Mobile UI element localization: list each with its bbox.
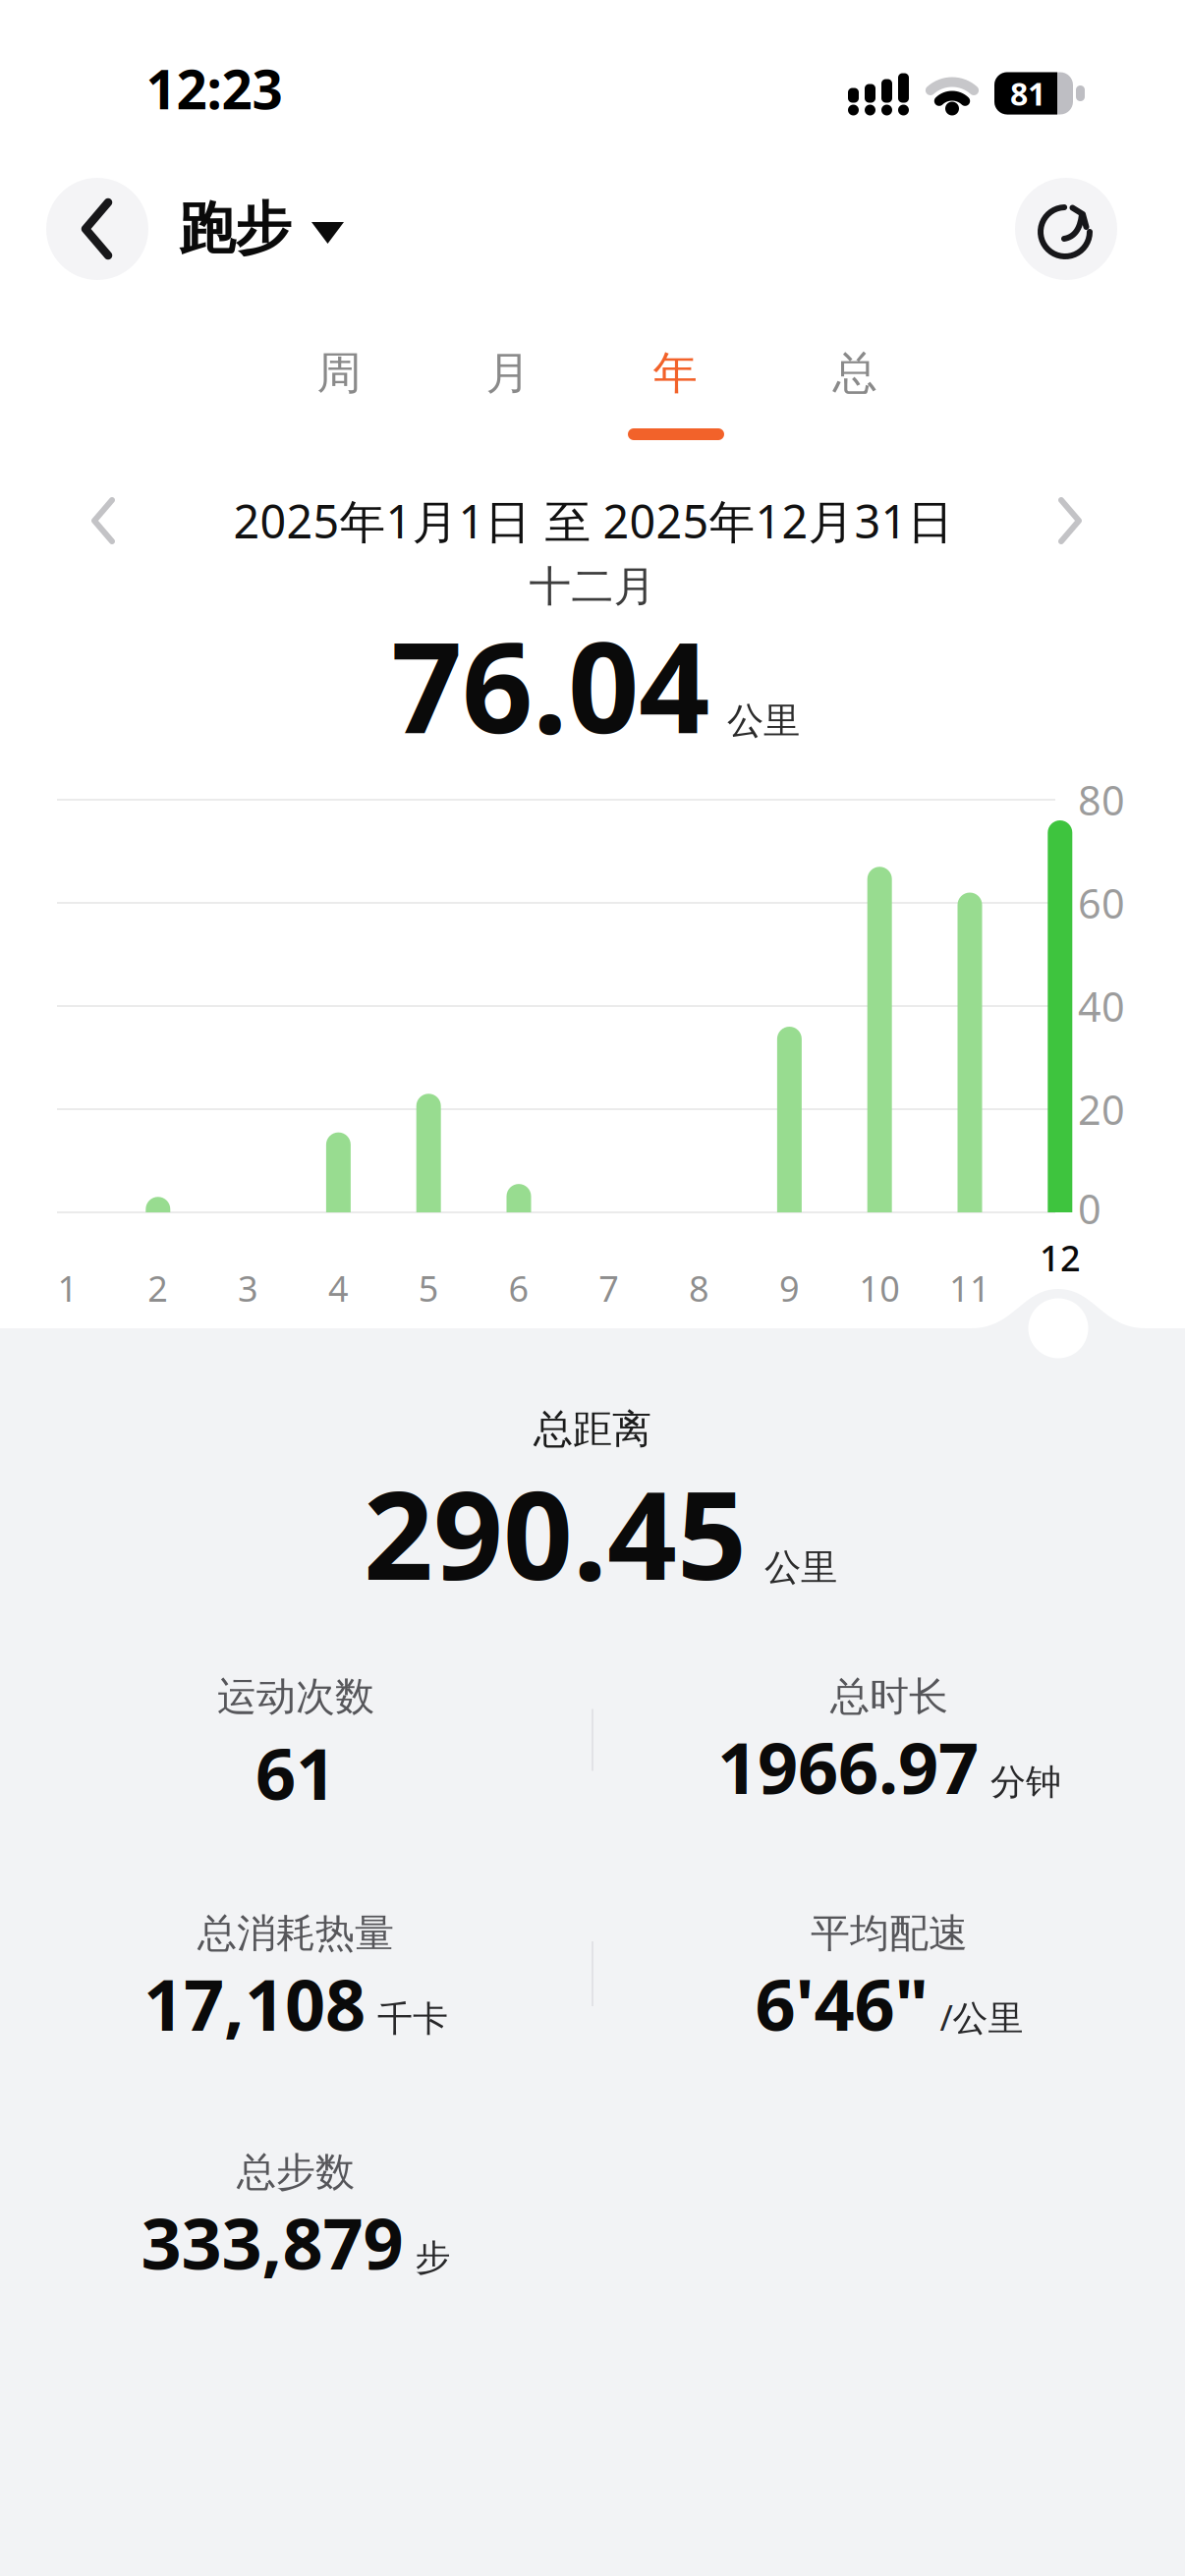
staticText: 总消耗热量 — [197, 1909, 394, 1958]
staticText: 20 — [1078, 1082, 1125, 1136]
button[interactable]: 月 — [444, 329, 572, 418]
button[interactable]: 周 — [275, 329, 403, 418]
staticText: 6'46" — [755, 1956, 928, 2050]
staticText: 0 — [1078, 1182, 1101, 1235]
staticText: 5 — [418, 1265, 439, 1311]
staticText: 11 — [949, 1265, 990, 1311]
staticText: 运动次数 — [217, 1673, 374, 1721]
button[interactable]: Refresh — [1015, 178, 1117, 280]
staticText: 9 — [779, 1265, 800, 1311]
button[interactable]: Back — [46, 178, 148, 280]
staticText: 12:23 — [146, 53, 282, 124]
staticText: 17,108 — [143, 1956, 366, 2050]
staticText: 80 — [1078, 773, 1125, 827]
staticText: 3 — [238, 1265, 259, 1311]
staticText: 333,879 — [141, 2195, 403, 2289]
staticText: 290.45 — [364, 1452, 747, 1614]
button[interactable]: 总 — [791, 329, 919, 418]
staticText: 60 — [1078, 876, 1125, 930]
staticText: 总距离 — [534, 1405, 651, 1454]
staticText: 总步数 — [237, 2148, 355, 2196]
staticText: 4 — [328, 1265, 349, 1311]
staticText: 总 — [833, 346, 877, 401]
staticText: 1 — [57, 1265, 78, 1311]
staticText: 分钟 — [990, 1760, 1061, 1804]
staticText: 步 — [415, 2236, 451, 2279]
button[interactable]: Next year — [1058, 500, 1082, 541]
staticText: 40 — [1078, 979, 1125, 1033]
staticText: 公里 — [727, 698, 800, 743]
staticText: 公里 — [764, 1545, 837, 1590]
staticText: 12 — [1040, 1234, 1081, 1281]
staticText: 10 — [859, 1265, 900, 1311]
staticText: 十二月 — [529, 561, 656, 612]
staticText: 平均配速 — [811, 1909, 968, 1958]
staticText: 61 — [255, 1725, 336, 1819]
staticText: 8 — [689, 1265, 710, 1311]
staticText: 总时长 — [830, 1673, 948, 1721]
staticText: 周 — [317, 346, 361, 401]
button[interactable]: 跑步 — [179, 194, 344, 263]
staticText: 7 — [599, 1265, 619, 1311]
staticText: 76.04 — [391, 602, 709, 767]
staticText: 月 — [486, 346, 530, 401]
staticText: 跑步 — [179, 194, 291, 263]
staticText: 1966.97 — [717, 1719, 979, 1813]
staticText: 6 — [508, 1265, 529, 1311]
staticText: 年 — [653, 346, 697, 401]
staticText: 千卡 — [377, 1997, 448, 2041]
staticText: 81 — [1010, 73, 1045, 114]
staticText: 2025年1月1日 至 2025年12月31日 — [233, 490, 954, 551]
button[interactable]: 年 — [611, 329, 739, 418]
staticText: 2 — [148, 1265, 168, 1311]
button[interactable]: Previous year — [91, 500, 115, 541]
staticText: /公里 — [940, 1994, 1023, 2040]
